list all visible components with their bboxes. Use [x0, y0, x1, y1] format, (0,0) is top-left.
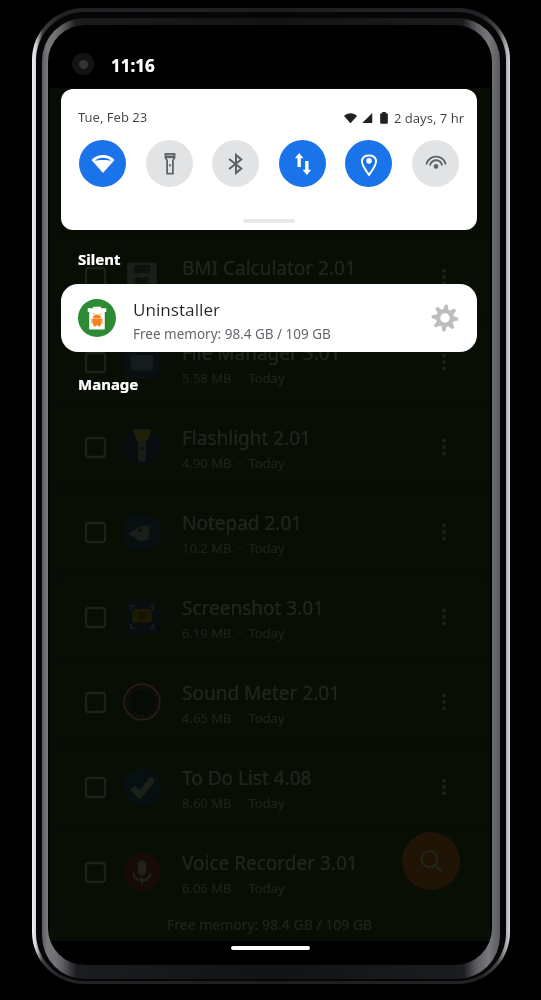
button[interactable]: Hotspot — [412, 140, 459, 187]
staticText: 4.65 MB · Today — [182, 709, 285, 727]
staticText: Uninstaller — [133, 298, 221, 321]
staticText: Free memory: 98.4 GB / 109 GB — [167, 915, 373, 934]
button[interactable]: Wi-Fi — [79, 140, 126, 187]
button[interactable]: More options — [427, 345, 461, 379]
button[interactable]: Select File Manager 3.01 — [80, 347, 110, 377]
staticText: Free memory: 98.4 GB / 109 GB — [133, 325, 331, 343]
button[interactable]: Select Notepad 2.01 — [80, 517, 110, 547]
staticText: Tue, Feb 23 — [78, 108, 148, 126]
staticText: Notepad 2.01 — [182, 510, 303, 536]
button[interactable]: More options — [427, 430, 461, 464]
staticText: 6.19 MB · Today — [182, 624, 285, 642]
button[interactable]: Select Voice Recorder 3.01 — [80, 857, 110, 887]
staticText: 4.90 MB · Today — [182, 454, 285, 472]
button[interactable]: Select Screenshot 3.01 — [50, 574, 490, 659]
button[interactable]: Select Flashlight 2.01 — [80, 432, 110, 462]
staticText: 5.58 MB · Today — [182, 369, 285, 387]
button[interactable]: Bluetooth — [212, 140, 259, 187]
button[interactable]: Select Sound Meter 2.01 — [50, 659, 490, 744]
button[interactable]: Select To Do List 4.08 — [50, 744, 490, 829]
staticText: BMI Calculator 2.01 — [182, 255, 356, 281]
button[interactable]: More options — [427, 600, 461, 634]
button[interactable]: Select Sound Meter 2.01 — [80, 687, 110, 717]
button[interactable]: Select Notepad 2.01 — [50, 489, 490, 574]
staticText: 10.2 MB · Today — [182, 539, 285, 557]
staticText: File Manager 3.01 — [182, 340, 341, 366]
button[interactable]: Select BMI Calculator 2.01 — [50, 234, 490, 319]
button[interactable]: More options — [427, 515, 461, 549]
button[interactable]: More options — [427, 260, 461, 294]
staticText: 2 days, 7 hr — [394, 109, 465, 127]
button[interactable]: Mobile data — [279, 140, 326, 187]
staticText: 8.60 MB · Today — [182, 794, 285, 812]
staticText: Silent — [78, 249, 121, 269]
button[interactable]: More options — [427, 685, 461, 719]
staticText: Manage — [78, 374, 139, 394]
button[interactable]: Search — [402, 832, 460, 890]
button[interactable]: Flashlight — [146, 140, 193, 187]
button[interactable]: Uninstaller — [61, 284, 477, 352]
button[interactable]: Location — [345, 140, 392, 187]
button[interactable]: Select BMI Calculator 2.01 — [80, 262, 110, 292]
staticText: 11:16 — [111, 54, 155, 77]
staticText: Screenshot 3.01 — [182, 595, 325, 621]
staticText: Sound Meter 2.01 — [182, 680, 341, 706]
button[interactable]: Select File Manager 3.01 — [50, 319, 490, 404]
staticText: Flashlight 2.01 — [182, 425, 311, 451]
button[interactable]: Select Screenshot 3.01 — [80, 602, 110, 632]
button[interactable]: More options — [427, 770, 461, 804]
staticText: 6.06 MB · Today — [182, 879, 285, 897]
button[interactable]: Select Voice Recorder 3.01 — [50, 829, 490, 914]
button[interactable]: More options — [427, 855, 461, 889]
staticText: Voice Recorder 3.01 — [182, 850, 358, 876]
button[interactable]: Notification settings — [429, 302, 461, 334]
staticText: To Do List 4.08 — [182, 765, 312, 791]
button[interactable]: Select Flashlight 2.01 — [50, 404, 490, 489]
button[interactable]: Select To Do List 4.08 — [80, 772, 110, 802]
